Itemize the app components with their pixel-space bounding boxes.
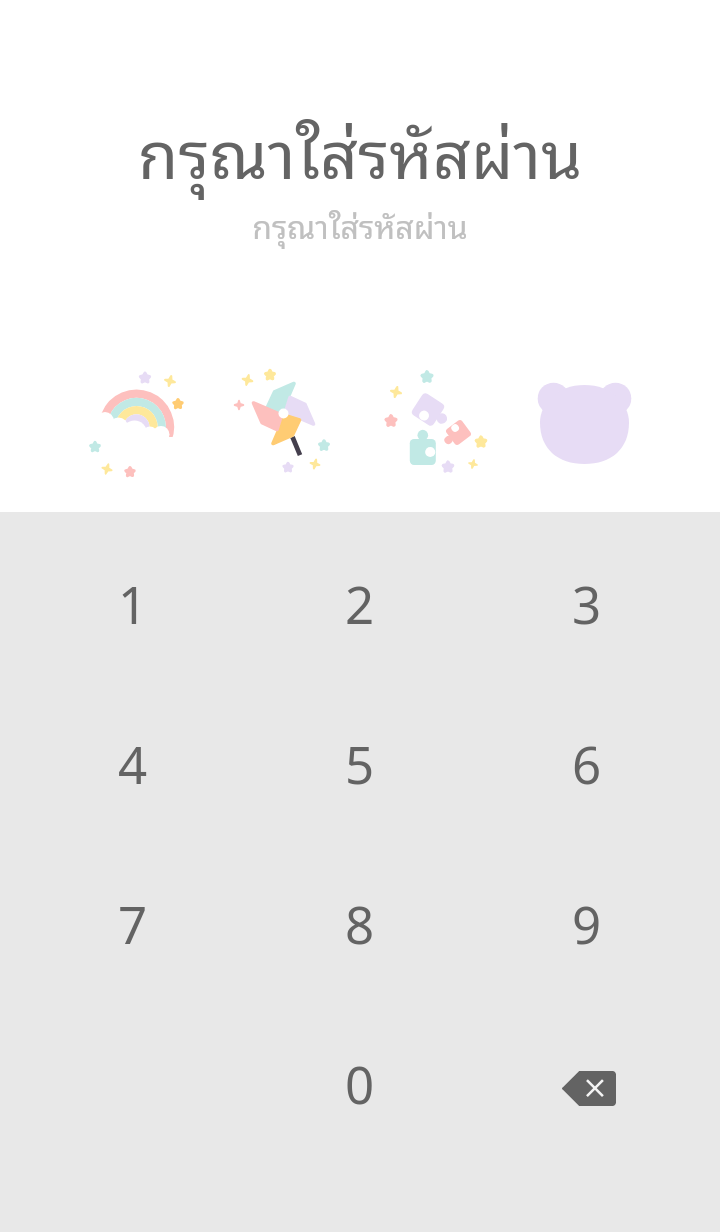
button[interactable]: 3 <box>473 523 700 683</box>
staticText: 1 <box>118 569 148 638</box>
button[interactable]: 2 <box>246 523 473 683</box>
button[interactable]: 8 <box>246 843 473 1003</box>
staticText: 8 <box>345 889 375 958</box>
button[interactable]: Puzzle theme <box>360 355 540 485</box>
staticText: 6 <box>572 729 602 798</box>
staticText: 4 <box>118 729 148 798</box>
staticText: 9 <box>572 889 602 958</box>
button[interactable]: 0 <box>246 1003 473 1163</box>
button[interactable]: 7 <box>20 843 246 1003</box>
staticText: 5 <box>345 729 375 798</box>
button[interactable]: Pinwheel theme <box>180 355 360 485</box>
other: Backspace <box>561 1071 616 1106</box>
staticText: 2 <box>345 569 375 638</box>
button[interactable]: 5 <box>246 683 473 843</box>
button[interactable]: 1 <box>20 523 246 683</box>
button[interactable]: 4 <box>20 683 246 843</box>
staticText: 0 <box>345 1049 375 1118</box>
staticText: กรุณาใส่รหัสผ่าน <box>0 96 720 202</box>
button[interactable]: Backspace <box>473 1003 700 1163</box>
button[interactable]: Bear theme <box>540 355 720 485</box>
staticText: 7 <box>118 889 148 958</box>
button[interactable]: 9 <box>473 843 700 1003</box>
staticText: 3 <box>572 569 602 638</box>
button[interactable]: 6 <box>473 683 700 843</box>
staticText: กรุณาใส่รหัสผ่าน <box>0 199 720 250</box>
button[interactable]: Rainbow theme <box>0 355 180 485</box>
